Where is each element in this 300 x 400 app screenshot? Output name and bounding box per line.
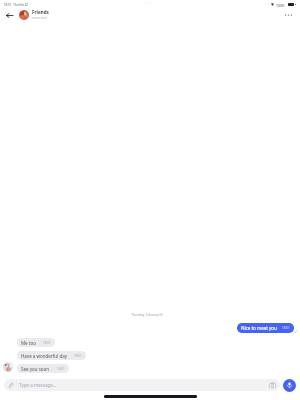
button[interactable]: Me too — [17, 338, 55, 347]
staticText: 18:51 — [43, 341, 51, 345]
staticText: Have a wonderful day — [21, 353, 67, 359]
button[interactable]: Attach file — [4, 379, 280, 391]
staticText: 100% — [276, 3, 285, 8]
button[interactable]: Back — [3, 9, 15, 21]
staticText: See you soon — [21, 366, 50, 372]
staticText: Nice to meet you — [241, 325, 277, 331]
staticText: connected — [32, 16, 47, 20]
staticText: Thursday, February 22 — [0, 313, 297, 317]
staticText: Friends — [32, 9, 49, 15]
staticText: 18:51 — [282, 326, 290, 330]
staticText: 18:51 — [57, 367, 65, 371]
staticText: 18:51 — [74, 354, 82, 358]
button[interactable]: More options — [282, 9, 294, 21]
button[interactable]: Friends — [19, 9, 49, 20]
button[interactable]: Have a wonderful day — [17, 351, 86, 360]
staticText: Type a message... — [19, 382, 57, 388]
staticText: 18:51 Thu Feb 22 — [4, 3, 28, 7]
other: Camera — [269, 382, 276, 388]
other: Attach file — [8, 382, 13, 388]
staticText: Me too — [21, 340, 36, 346]
button[interactable]: Nice to meet you — [237, 323, 294, 333]
button[interactable]: Record voice message — [283, 379, 296, 392]
button[interactable]: See you soon — [17, 364, 69, 373]
